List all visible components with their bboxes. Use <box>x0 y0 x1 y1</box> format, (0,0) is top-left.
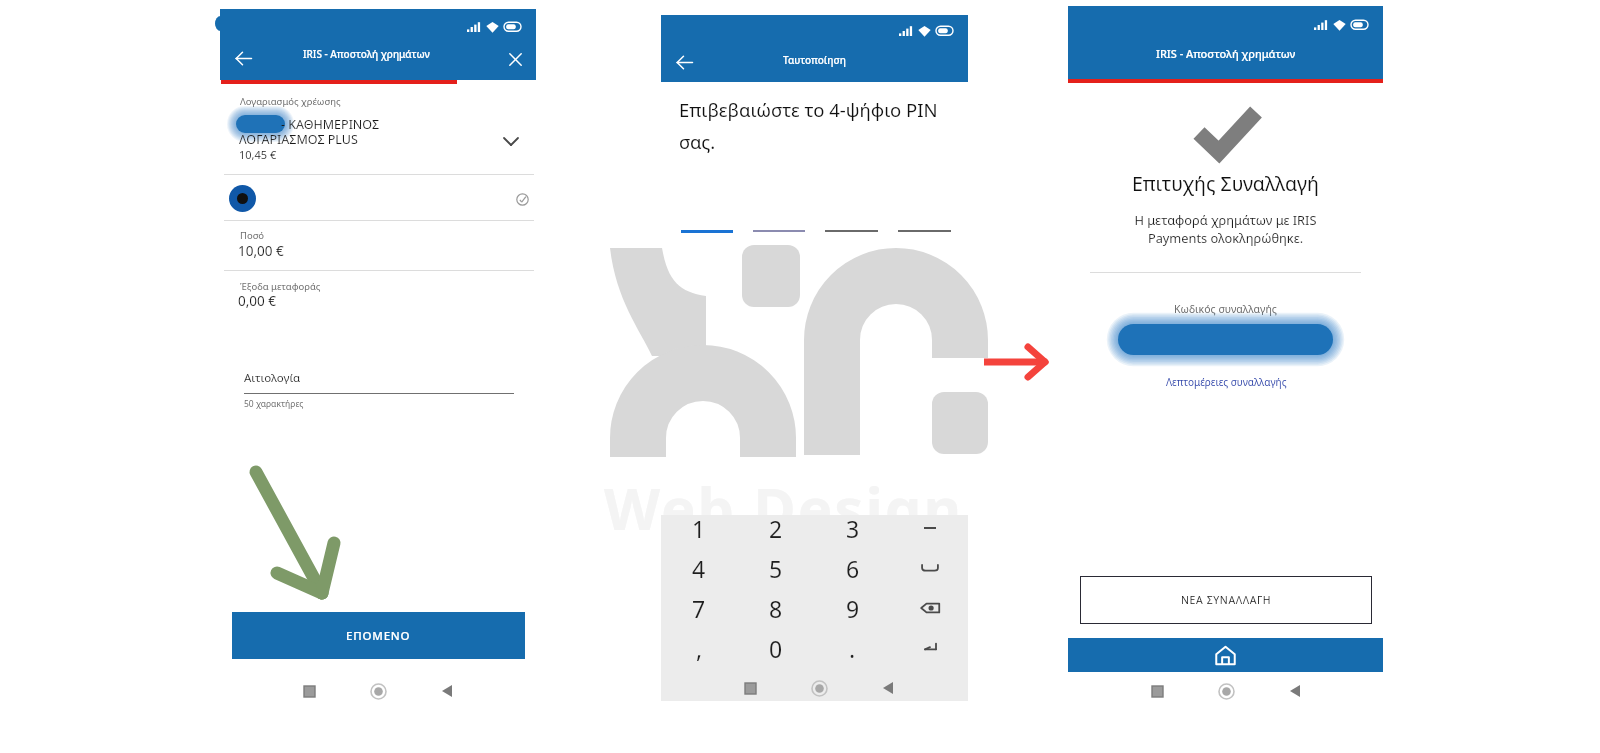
staticText: Λεπτομέρειες συναλλαγής <box>1166 375 1287 389</box>
staticText: 10,45 € <box>239 147 639 162</box>
button[interactable]: Recents <box>298 681 320 701</box>
staticText: ΝΕΑ ΣΥΝΑΛΛΑΓΗ <box>1181 593 1272 607</box>
button[interactable]: 5 <box>737 548 814 588</box>
button[interactable]: 0 <box>737 628 814 668</box>
button[interactable]: Close <box>503 47 527 71</box>
button[interactable]: back <box>891 588 968 628</box>
staticText: , <box>696 633 703 664</box>
staticText: Λογαριασμός χρέωσης <box>240 95 640 108</box>
button[interactable]: Back <box>1284 681 1306 701</box>
button[interactable]: , <box>661 628 737 668</box>
staticText: 6 <box>846 553 860 584</box>
button[interactable]: Recents <box>739 678 761 698</box>
staticText: Αιτιολογία <box>244 370 644 386</box>
button[interactable]: Back <box>670 49 698 75</box>
staticText: ΕΠΟΜΕΝΟ <box>346 628 411 644</box>
staticText: Ταυτοποίηση <box>783 53 846 67</box>
button[interactable]: Back <box>436 681 458 701</box>
staticText: IRIS - Αποστολή χρημάτων <box>1156 46 1296 61</box>
staticText: 0 <box>769 633 783 664</box>
button[interactable]: 2 <box>737 508 814 548</box>
button[interactable]: Λεπτομέρειες συναλλαγής <box>1120 374 1332 390</box>
staticText: IRIS - Αποστολή χρημάτων <box>303 47 430 61</box>
button[interactable]: Back <box>877 678 899 698</box>
staticText: Επιτυχής Συναλλαγή <box>1068 170 1383 197</box>
button[interactable]: Home <box>808 678 830 698</box>
button[interactable]: space <box>891 548 968 588</box>
button[interactable]: 3 <box>814 508 891 548</box>
button[interactable] <box>224 176 534 220</box>
staticText: 10,00 € <box>238 242 638 260</box>
button[interactable]: minus <box>891 508 968 548</box>
button[interactable]: 8 <box>737 588 814 628</box>
button[interactable]: 7 <box>661 588 737 628</box>
staticText: 7 <box>692 593 706 624</box>
button[interactable]: Home <box>1068 638 1383 672</box>
button[interactable]: Expand account <box>498 128 524 154</box>
staticText: . <box>849 633 856 664</box>
button[interactable]: Home <box>367 681 389 701</box>
staticText: 4 <box>692 553 706 584</box>
button[interactable]: enter <box>891 628 968 668</box>
staticText: 3 <box>846 513 860 544</box>
staticText: 2 <box>769 513 783 544</box>
staticText: 5 <box>769 553 783 584</box>
staticText: ΛΟΓΑΡΙΑΣΜΟΣ PLUS <box>239 131 639 148</box>
button[interactable]: 4 <box>661 548 737 588</box>
staticText: Κωδικός συναλλαγής <box>1068 302 1383 316</box>
button[interactable]: . <box>814 628 891 668</box>
staticText: 9 <box>846 593 860 624</box>
button[interactable]: 1 <box>661 508 737 548</box>
button[interactable]: Home <box>1215 681 1237 701</box>
staticText: 50 χαρακτήρες <box>244 398 644 410</box>
staticText: 1 <box>692 513 706 544</box>
button[interactable]: 6 <box>814 548 891 588</box>
staticText: 8 <box>769 593 783 624</box>
staticText: Έξοδα μεταφοράς <box>240 280 640 293</box>
button[interactable]: Back <box>229 45 257 71</box>
staticText: Η μεταφορά χρημάτων με IRIS Payments ολο… <box>1068 211 1383 247</box>
button[interactable]: 9 <box>814 588 891 628</box>
staticText: 0,00 € <box>238 292 638 310</box>
staticText: Ποσό <box>240 229 640 242</box>
staticText: Επιβεβαιώστε το 4-ψήφιο PIN σας. <box>679 97 969 155</box>
button[interactable]: Recents <box>1146 681 1168 701</box>
button[interactable]: ΕΠΟΜΕΝΟ <box>232 612 525 659</box>
staticText: - ΚΑΘΗΜΕΡΙΝΟΣ <box>281 116 681 133</box>
button[interactable]: ΝΕΑ ΣΥΝΑΛΛΑΓΗ <box>1080 576 1372 624</box>
staticText: Web Design <box>604 468 964 547</box>
